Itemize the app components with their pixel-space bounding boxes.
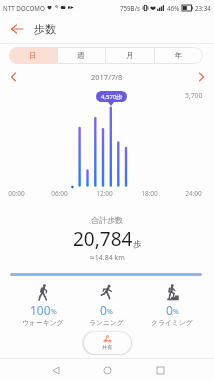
- button[interactable]: 0: [74, 282, 138, 328]
- button[interactable]: 月: [105, 47, 154, 64]
- staticText: NTT DOCOMO: [3, 4, 45, 12]
- staticText: クライミング: [151, 318, 193, 327]
- staticText: 合計歩数: [91, 215, 123, 225]
- staticText: 4,570歩: [101, 93, 123, 101]
- staticText: 06:00: [51, 189, 68, 198]
- staticText: 共有: [102, 344, 113, 351]
- staticText: 月: [126, 51, 134, 60]
- staticText: 18:00: [141, 189, 158, 198]
- button[interactable]: Recents: [152, 362, 168, 378]
- staticText: 2017/7/8: [91, 72, 123, 82]
- staticText: 23:34: [195, 4, 211, 12]
- staticText: 歩: [133, 239, 142, 250]
- button[interactable]: 0: [140, 282, 204, 328]
- staticText: 100: [30, 302, 51, 318]
- staticText: 歩数: [34, 22, 56, 36]
- button[interactable]: Back: [6, 18, 28, 40]
- button[interactable]: 週: [57, 47, 105, 64]
- staticText: %: [173, 307, 179, 317]
- staticText: %: [107, 307, 113, 317]
- staticText: 日: [29, 51, 37, 60]
- button[interactable]: 共有: [84, 332, 131, 354]
- button[interactable]: Back: [48, 362, 64, 378]
- staticText: 週: [77, 51, 85, 60]
- staticText: 24:00: [185, 189, 202, 198]
- staticText: ≈14.84 km: [89, 253, 125, 263]
- button[interactable]: Previous day: [5, 69, 21, 85]
- staticText: 5,700: [185, 91, 203, 100]
- button[interactable]: Home: [99, 362, 115, 378]
- staticText: 00:00: [8, 189, 25, 198]
- button[interactable]: 100: [11, 282, 75, 328]
- button[interactable]: 日: [9, 47, 57, 64]
- staticText: 0: [166, 302, 173, 318]
- staticText: 12:00: [96, 189, 113, 198]
- staticText: 759B/s: [120, 4, 140, 12]
- staticText: 46%: [167, 4, 180, 12]
- staticText: %: [51, 307, 57, 317]
- button[interactable]: Next day: [193, 69, 209, 85]
- staticText: ウォーキング: [22, 318, 64, 327]
- staticText: 20,784: [73, 226, 133, 252]
- button[interactable]: 年: [154, 47, 203, 64]
- staticText: ランニング: [89, 318, 124, 327]
- staticText: 年: [175, 51, 183, 60]
- staticText: 0: [100, 302, 107, 318]
